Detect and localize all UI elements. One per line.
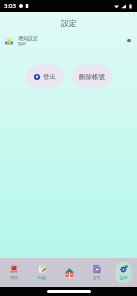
staticText: 紀錄 <box>38 275 46 280</box>
button[interactable]: 設定 <box>115 262 132 283</box>
staticText: 設定 <box>120 275 128 280</box>
staticText: 通知設定 <box>18 35 38 41</box>
button[interactable]: 好友 <box>83 258 110 287</box>
button[interactable]: 學習 <box>0 258 28 287</box>
staticText: 3:03 <box>4 2 16 10</box>
staticText: 開啟 <box>18 41 26 46</box>
button[interactable]: 紀錄 <box>28 258 56 287</box>
button[interactable]: 通知設定 <box>0 32 137 49</box>
staticText: 登出 <box>43 73 56 81</box>
button[interactable]: 登出 <box>26 65 64 88</box>
button[interactable]: 刪除帳號 <box>72 65 112 88</box>
staticText: 學習 <box>10 275 18 280</box>
button[interactable]: 首頁 <box>56 258 83 287</box>
staticText: 好友 <box>93 275 101 280</box>
staticText: 設定 <box>61 18 77 28</box>
staticText: 刪除帳號 <box>79 73 105 81</box>
